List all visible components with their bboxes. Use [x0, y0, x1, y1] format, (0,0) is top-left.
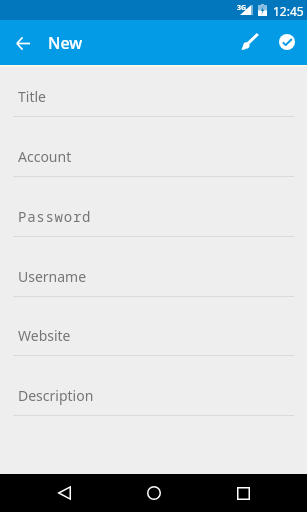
staticText: Title	[18, 87, 46, 106]
button[interactable]: Title	[0, 68, 307, 124]
button[interactable]: Back	[44, 474, 84, 512]
button[interactable]: Back	[3, 23, 43, 63]
button[interactable]: Password	[0, 188, 307, 244]
button[interactable]: Account	[0, 128, 307, 184]
staticText: 12:45	[273, 3, 304, 19]
button[interactable]: Description	[0, 367, 307, 423]
staticText: Website	[18, 326, 71, 345]
button[interactable]: Brush	[230, 22, 270, 62]
button[interactable]: Recents	[223, 474, 263, 512]
staticText: Description	[18, 386, 94, 405]
staticText: Account	[18, 147, 72, 166]
button[interactable]: Website	[0, 307, 307, 363]
staticText: 3G	[237, 3, 247, 13]
staticText: Username	[18, 267, 87, 286]
staticText: New	[48, 32, 83, 54]
button[interactable]: Home	[134, 474, 174, 512]
button[interactable]: Username	[0, 248, 307, 304]
button[interactable]: Save	[267, 22, 307, 62]
staticText: Password	[18, 207, 92, 226]
